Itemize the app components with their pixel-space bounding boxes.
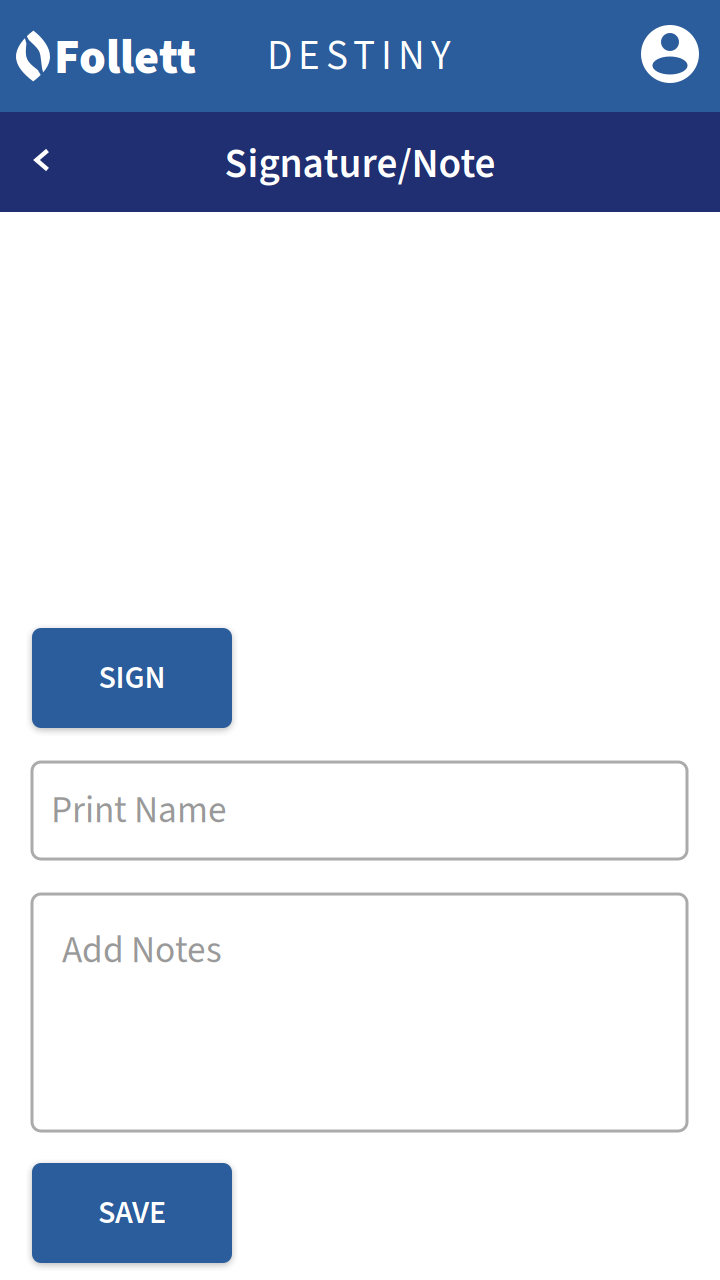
staticText: Add Notes bbox=[62, 924, 222, 977]
staticText: SIGN bbox=[98, 655, 165, 701]
button[interactable]: Account bbox=[620, 0, 720, 112]
staticText: SAVE bbox=[98, 1190, 166, 1236]
button[interactable]: SIGN bbox=[32, 628, 232, 728]
staticText: DESTINY bbox=[267, 27, 451, 85]
staticText: Signature/Note bbox=[224, 135, 495, 193]
staticText: Follett bbox=[54, 24, 196, 92]
staticText: Print Name bbox=[51, 784, 227, 837]
button[interactable]: Back bbox=[0, 112, 74, 212]
button[interactable]: Follett home bbox=[0, 0, 206, 112]
button[interactable]: SAVE bbox=[32, 1163, 232, 1263]
